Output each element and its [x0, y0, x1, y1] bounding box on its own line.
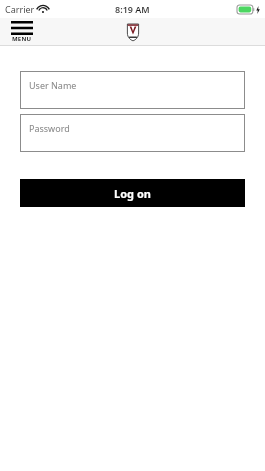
staticText: MENU	[12, 35, 32, 43]
staticText: Password	[29, 122, 70, 134]
button[interactable]: User Name	[20, 71, 245, 109]
staticText: Carrier	[5, 3, 35, 15]
staticText: 8:19 AM	[115, 3, 150, 15]
staticText: Log on	[114, 186, 151, 201]
button[interactable]: Home logo	[122, 21, 144, 43]
button[interactable]: Menu	[11, 21, 33, 43]
staticText: User Name	[29, 79, 77, 91]
button[interactable]: Password	[20, 114, 245, 152]
button[interactable]: Log on	[20, 179, 245, 207]
